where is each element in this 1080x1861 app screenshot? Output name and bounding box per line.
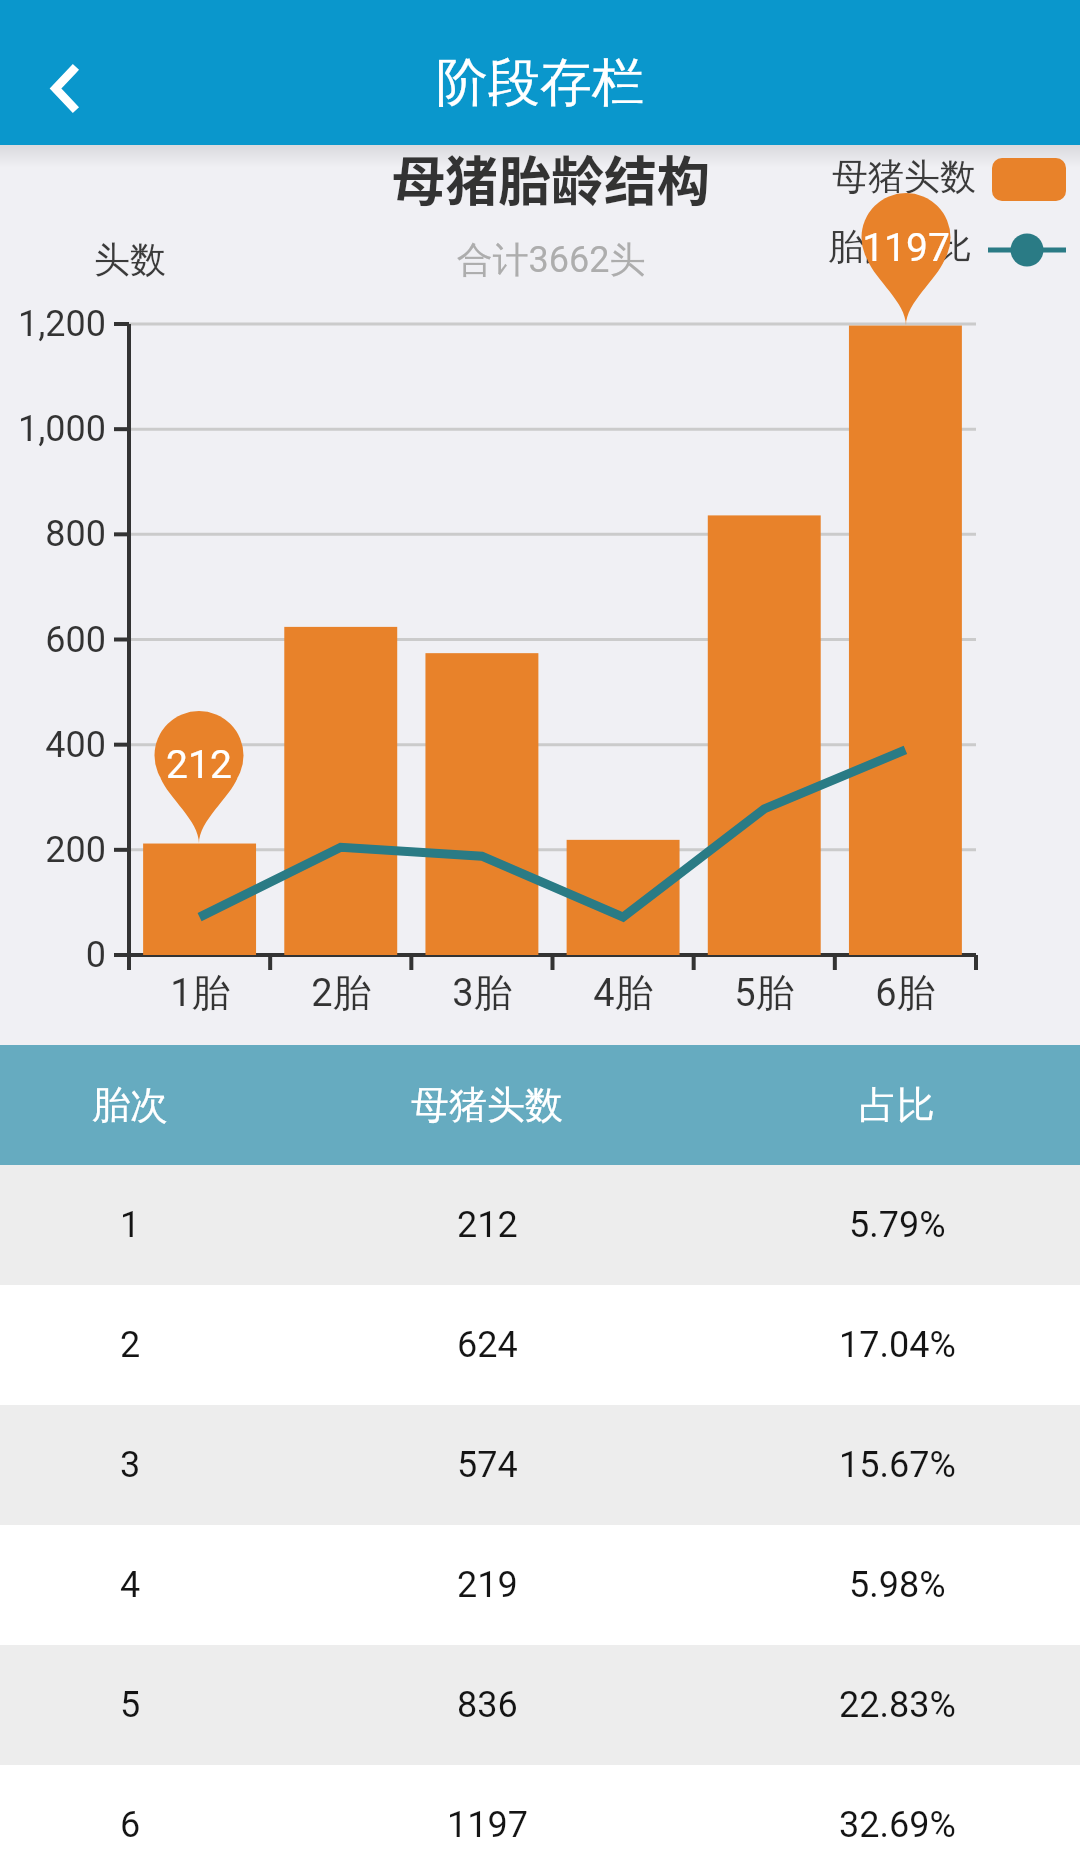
staticText: 1,200 <box>0 303 106 345</box>
staticText: 17.04% <box>839 1324 956 1366</box>
button[interactable]: 6 <box>0 1765 1080 1861</box>
staticText: 5.98% <box>849 1564 946 1606</box>
staticText: 4 <box>120 1564 141 1606</box>
staticText: 219 <box>457 1564 518 1606</box>
staticText: 胎龄占比 <box>828 224 972 269</box>
button[interactable]: 3 <box>0 1405 1080 1525</box>
button[interactable]: 1 <box>0 1165 1080 1285</box>
staticText: 6胎 <box>655 969 1080 1017</box>
staticText: 836 <box>457 1684 518 1726</box>
staticText: 2胎 <box>91 969 591 1017</box>
staticText: 1197 <box>447 1804 528 1846</box>
staticText: 15.67% <box>839 1444 956 1486</box>
staticText: 624 <box>457 1324 518 1366</box>
staticText: 3 <box>120 1444 141 1486</box>
staticText: 800 <box>0 513 106 555</box>
staticText: 合计3662头 <box>301 237 801 282</box>
staticText: 1胎 <box>0 969 450 1017</box>
button[interactable]: Back <box>0 0 120 145</box>
staticText: 头数 <box>94 237 166 282</box>
staticText: 0 <box>0 934 106 976</box>
button[interactable]: 2 <box>0 1285 1080 1405</box>
staticText: 占比 <box>859 1081 935 1129</box>
staticText: 1,000 <box>0 408 106 450</box>
staticText: 4胎 <box>373 969 873 1017</box>
staticText: 母猪头数 <box>832 154 976 199</box>
staticText: 5胎 <box>514 969 1014 1017</box>
staticText: 3胎 <box>232 969 732 1017</box>
staticText: 5.79% <box>849 1204 946 1246</box>
staticText: 22.83% <box>839 1684 956 1726</box>
staticText: 1 <box>120 1204 141 1246</box>
staticText: 2 <box>120 1324 141 1366</box>
button[interactable]: 5 <box>0 1645 1080 1765</box>
button[interactable]: 4 <box>0 1525 1080 1645</box>
staticText: 1197 <box>656 225 1080 271</box>
staticText: 600 <box>0 619 106 661</box>
staticText: 200 <box>0 829 106 871</box>
staticText: 母猪胎龄结构 <box>301 140 801 217</box>
staticText: 5 <box>120 1684 141 1726</box>
staticText: 母猪头数 <box>411 1081 563 1129</box>
staticText: 阶段存栏 <box>436 50 644 116</box>
staticText: 400 <box>0 724 106 766</box>
staticText: 212 <box>0 742 449 788</box>
staticText: 胎次 <box>92 1081 168 1129</box>
staticText: 6 <box>120 1804 141 1846</box>
staticText: 574 <box>457 1444 518 1486</box>
staticText: 32.69% <box>839 1804 956 1846</box>
staticText: 212 <box>457 1204 518 1246</box>
